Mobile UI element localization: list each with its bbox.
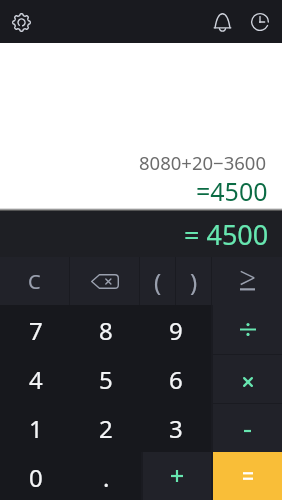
button[interactable]: 9 <box>141 305 211 354</box>
button[interactable]: Backspace <box>70 257 139 305</box>
button[interactable]: History <box>245 7 275 37</box>
button[interactable]: Settings <box>6 7 36 37</box>
button[interactable]: 5 <box>71 354 141 403</box>
staticText: . <box>103 461 110 494</box>
button[interactable]: Greater than or equal <box>212 257 282 305</box>
staticText: ( <box>154 265 162 298</box>
button[interactable]: 1 <box>0 403 71 452</box>
staticText: = 4500 <box>184 216 269 253</box>
button[interactable]: Notifications <box>207 7 237 37</box>
staticText: 4 <box>29 363 43 396</box>
button[interactable]: 3 <box>141 403 211 452</box>
button[interactable]: Open parenthesis <box>140 257 175 305</box>
staticText: =4500 <box>196 174 268 208</box>
staticText: C <box>28 268 41 295</box>
staticText: 2 <box>99 412 113 445</box>
staticText: 8 <box>99 314 113 347</box>
button[interactable]: 8 <box>71 305 141 354</box>
button[interactable]: Multiply <box>213 355 282 403</box>
staticText: 0 <box>29 461 43 494</box>
button[interactable]: 4 <box>0 354 71 403</box>
button[interactable]: Minus <box>213 404 282 452</box>
button[interactable]: Plus <box>141 452 211 500</box>
button[interactable]: 7 <box>0 305 71 354</box>
staticText: 8080+20−3600 <box>139 150 266 175</box>
button[interactable]: Close parenthesis <box>176 257 211 305</box>
staticText: 7 <box>29 314 43 347</box>
button[interactable]: 6 <box>141 354 211 403</box>
button[interactable]: 2 <box>71 403 141 452</box>
staticText: 5 <box>99 363 113 396</box>
staticText: 3 <box>169 412 183 445</box>
button[interactable]: Clear <box>0 257 69 305</box>
staticText: ) <box>190 265 198 298</box>
button[interactable]: . <box>71 452 141 500</box>
staticText: 6 <box>169 363 183 396</box>
button[interactable]: Equals <box>213 452 282 500</box>
staticText: 1 <box>29 412 43 445</box>
button[interactable]: 0 <box>0 452 71 500</box>
button[interactable]: Divide <box>213 305 282 354</box>
staticText: 9 <box>169 314 183 347</box>
